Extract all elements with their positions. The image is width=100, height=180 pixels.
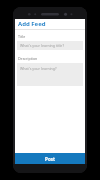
button[interactable]: What's your learning? bbox=[17, 63, 83, 86]
staticText: Title bbox=[18, 34, 26, 39]
staticText: What's your learning? bbox=[20, 66, 57, 71]
button[interactable]: What's your learning title? bbox=[17, 41, 83, 50]
staticText: What's your learning title? bbox=[20, 43, 64, 48]
staticText: Post bbox=[45, 156, 55, 162]
button[interactable]: Post bbox=[15, 153, 85, 164]
staticText: Description bbox=[18, 56, 38, 61]
staticText: Add Feed bbox=[18, 20, 46, 28]
